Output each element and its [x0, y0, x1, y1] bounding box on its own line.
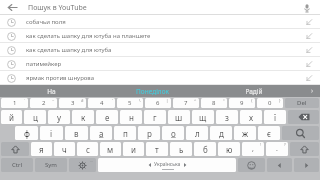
- staticText: н: [129, 112, 134, 123]
- button[interactable]: .: [266, 142, 288, 156]
- button[interactable]: Space: [98, 158, 236, 172]
- button[interactable]: 2: [30, 98, 57, 108]
- button[interactable]: Delete: [285, 98, 319, 108]
- staticText: \: [139, 98, 141, 103]
- staticText: Ctrl: [12, 161, 22, 169]
- button[interactable]: е: [96, 110, 118, 124]
- staticText: з: [225, 112, 229, 123]
- staticText: в: [74, 128, 79, 139]
- button[interactable]: Back: [6, 1, 19, 14]
- staticText: 4: [100, 99, 104, 107]
- button[interactable]: п: [114, 126, 136, 140]
- staticText: .: [276, 144, 278, 154]
- staticText: патимейкер: [26, 60, 299, 68]
- button[interactable]: Search: [282, 126, 319, 140]
- button[interactable]: ю: [218, 142, 240, 156]
- button[interactable]: More suggestions: [304, 85, 320, 97]
- button[interactable]: как сделать шапку для ютуба на планшете: [0, 29, 320, 43]
- button[interactable]: є: [258, 126, 280, 140]
- button[interactable]: 1: [1, 98, 28, 108]
- staticText: й: [9, 112, 14, 123]
- staticText: `: [24, 98, 26, 103]
- button[interactable]: р: [138, 126, 160, 140]
- staticText: є: [267, 128, 271, 139]
- button[interactable]: х: [240, 110, 262, 124]
- button[interactable]: м: [100, 142, 121, 156]
- button[interactable]: ярмак против шнурова: [0, 71, 320, 85]
- button[interactable]: 6: [145, 98, 171, 108]
- button[interactable]: ц: [24, 110, 46, 124]
- button[interactable]: і: [40, 126, 63, 140]
- button[interactable]: й: [1, 110, 22, 124]
- button[interactable]: 4: [88, 98, 115, 108]
- staticText: ш: [175, 112, 183, 123]
- button[interactable]: Left: [267, 158, 292, 172]
- button[interactable]: з: [216, 110, 238, 124]
- staticText: ярмак против шнурова: [26, 74, 299, 82]
- button[interactable]: 0: [257, 98, 283, 108]
- staticText: !: [260, 142, 262, 147]
- button[interactable]: Voice search: [301, 2, 313, 14]
- staticText: ›: [311, 86, 314, 96]
- staticText: е: [105, 112, 110, 123]
- button[interactable]: Понеділок: [102, 85, 203, 97]
- staticText: д: [219, 128, 224, 139]
- button[interactable]: 8: [201, 98, 227, 108]
- staticText: л: [195, 128, 200, 139]
- button[interactable]: Ctrl: [1, 158, 33, 172]
- staticText: ц: [33, 112, 38, 123]
- button[interactable]: Right: [294, 158, 319, 172]
- button[interactable]: На: [0, 85, 102, 97]
- button[interactable]: собачьи поля: [0, 15, 320, 29]
- button[interactable]: д: [210, 126, 232, 140]
- button[interactable]: Backspace: [288, 110, 319, 124]
- button[interactable]: ж: [234, 126, 256, 140]
- button[interactable]: ш: [168, 110, 190, 124]
- staticText: х: [249, 112, 254, 123]
- button[interactable]: а: [90, 126, 112, 140]
- button[interactable]: патимейкер: [0, 57, 320, 71]
- button[interactable]: 3: [59, 98, 86, 108]
- button[interactable]: 7: [173, 98, 199, 108]
- button[interactable]: о: [162, 126, 184, 140]
- button[interactable]: в: [65, 126, 88, 140]
- button[interactable]: Радій: [203, 85, 304, 97]
- button[interactable]: ф: [15, 126, 38, 140]
- button[interactable]: т: [146, 142, 168, 156]
- button[interactable]: Sym: [35, 158, 67, 172]
- button[interactable]: Shift: [1, 142, 29, 156]
- staticText: о: [171, 128, 176, 139]
- staticText: ?: [284, 142, 286, 147]
- button[interactable]: как сделать шапку для ютуба: [0, 43, 320, 57]
- staticText: с: [86, 144, 90, 155]
- button[interactable]: у: [48, 110, 70, 124]
- button[interactable]: к: [72, 110, 94, 124]
- button[interactable]: Emoji: [238, 158, 265, 172]
- button[interactable]: с: [77, 142, 98, 156]
- button[interactable]: ,: [242, 142, 264, 156]
- staticText: ф: [24, 128, 30, 139]
- staticText: Радій: [245, 87, 263, 96]
- staticText: ...: [90, 158, 94, 163]
- staticText: м: [107, 144, 114, 155]
- button[interactable]: г: [144, 110, 166, 124]
- button[interactable]: л: [186, 126, 208, 140]
- button[interactable]: щ: [192, 110, 214, 124]
- staticText: |: [166, 98, 169, 103]
- button[interactable]: б: [194, 142, 216, 156]
- button[interactable]: 9: [229, 98, 255, 108]
- button[interactable]: ч: [54, 142, 75, 156]
- staticText: у: [57, 112, 62, 123]
- button[interactable]: ь: [170, 142, 192, 156]
- button[interactable]: 5: [117, 98, 143, 108]
- button[interactable]: Input settings: [69, 158, 96, 172]
- staticText: 7: [184, 99, 188, 107]
- staticText: ~: [52, 98, 55, 103]
- button[interactable]: и: [123, 142, 144, 156]
- button[interactable]: ї: [264, 110, 286, 124]
- button[interactable]: я: [31, 142, 52, 156]
- button[interactable]: Shift: [290, 142, 319, 156]
- staticText: щ: [199, 112, 207, 123]
- button[interactable]: н: [120, 110, 142, 124]
- staticText: ж: [242, 128, 249, 139]
